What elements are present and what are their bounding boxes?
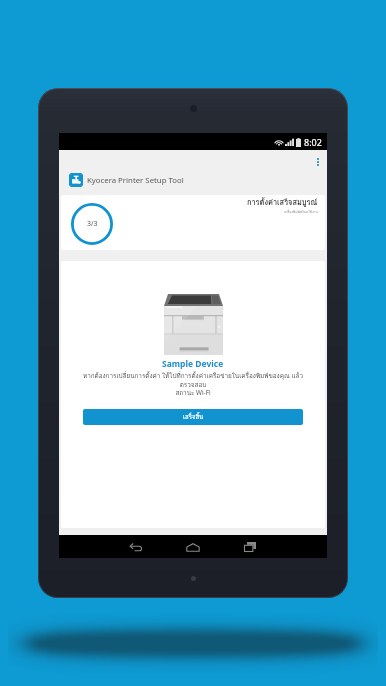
staticText: 8:02: [304, 136, 322, 148]
staticText: เสร็จสิ้น: [183, 412, 204, 422]
button[interactable]: Recents: [232, 536, 268, 558]
staticText: หากต้องการเปลี่ยนการตั้งค่า ให้ไปที่การต…: [77, 371, 309, 398]
staticText: Sample Device: [162, 358, 224, 370]
staticText: เครื่องพิมพ์พร้อมใช้งาน: [284, 209, 318, 214]
staticText: การตั้งค่าเสร็จสมบูรณ์: [247, 196, 318, 208]
button[interactable]: เสร็จสิ้น: [83, 409, 303, 425]
staticText: Kyocera Printer Setup Tool: [87, 175, 184, 186]
button[interactable]: Back: [118, 536, 154, 558]
staticText: 3/3: [87, 219, 98, 229]
button[interactable]: Home: [175, 536, 211, 558]
button[interactable]: More options: [311, 155, 325, 169]
